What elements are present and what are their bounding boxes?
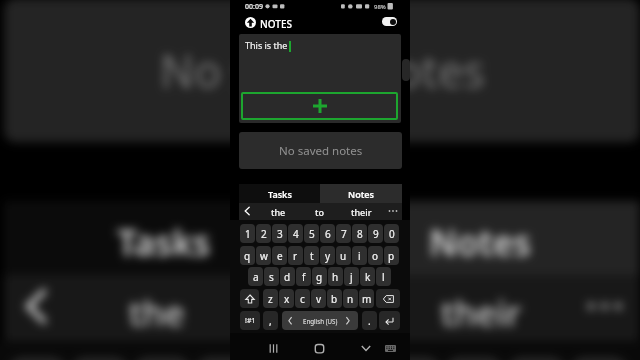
staticText: j [350, 270, 353, 284]
button[interactable] [379, 311, 400, 330]
staticText: English (US) [303, 317, 338, 325]
button[interactable]: Notes [320, 184, 402, 203]
button[interactable]: to [302, 203, 336, 220]
button[interactable]: j [344, 267, 359, 286]
button[interactable]: their [406, 275, 554, 341]
button[interactable]: d [280, 267, 295, 286]
staticText: No saved notes [279, 143, 363, 159]
staticText: 98% [374, 3, 386, 11]
button[interactable]: 8 [445, 357, 503, 360]
button[interactable] [382, 17, 397, 26]
button[interactable]: Tasks [239, 184, 321, 203]
button[interactable]: g [312, 267, 327, 286]
button[interactable]: the [86, 275, 226, 341]
button[interactable]: w [256, 246, 271, 265]
staticText: 5 [309, 227, 315, 241]
button[interactable]: i [352, 246, 367, 265]
button[interactable] [585, 287, 624, 326]
staticText: 00:09 [245, 2, 263, 12]
staticText: q [244, 249, 251, 263]
button[interactable]: s [264, 267, 279, 286]
button[interactable]: 0 [384, 224, 399, 243]
button[interactable]: 9 [507, 357, 566, 360]
button[interactable]: e [272, 246, 287, 265]
button[interactable]: No saved notes [4, 0, 640, 142]
button[interactable] [243, 206, 252, 216]
button[interactable]: c [295, 289, 310, 308]
button[interactable]: . [362, 311, 377, 330]
staticText: e [277, 249, 283, 263]
button[interactable]: m [359, 289, 374, 308]
staticText: their [351, 206, 372, 218]
button[interactable] [376, 289, 400, 308]
button[interactable]: t [304, 246, 319, 265]
button[interactable]: their [342, 203, 380, 220]
staticText: the [271, 206, 286, 218]
button[interactable] [241, 92, 398, 120]
button[interactable]: English (US) [282, 311, 358, 330]
button[interactable]: x [279, 289, 294, 308]
staticText: i [358, 249, 361, 263]
staticText: l [382, 270, 385, 284]
staticText: the [129, 287, 187, 334]
button[interactable]: 2 [256, 224, 271, 243]
staticText: m [362, 292, 372, 306]
staticText: 0 [389, 227, 395, 241]
button[interactable] [20, 287, 55, 326]
button[interactable]: 8 [352, 224, 367, 243]
button[interactable]: z [263, 289, 278, 308]
staticText: Notes [429, 217, 534, 263]
button[interactable]: 5 [304, 224, 319, 243]
button[interactable]: 9 [368, 224, 383, 243]
button[interactable]: f [296, 267, 311, 286]
button[interactable]: 6 [320, 224, 335, 243]
button[interactable] [385, 345, 396, 352]
button[interactable] [361, 345, 371, 352]
staticText: w [260, 249, 268, 263]
button[interactable]: to [250, 275, 382, 341]
button[interactable] [269, 344, 278, 354]
button[interactable]: l [376, 267, 391, 286]
button[interactable]: 3 [133, 357, 191, 360]
staticText: p [388, 249, 395, 263]
staticText: 3 [277, 227, 283, 241]
staticText: r [293, 249, 298, 263]
button[interactable]: k [360, 267, 375, 286]
button[interactable]: q [240, 246, 255, 265]
button[interactable]: y [320, 246, 335, 265]
button[interactable]: Notes [320, 201, 640, 275]
staticText: g [316, 270, 323, 284]
button[interactable]: r [288, 246, 303, 265]
button[interactable]: , [263, 311, 278, 330]
button[interactable]: 4 [195, 357, 254, 360]
button[interactable]: Tasks [4, 201, 324, 275]
button[interactable]: n [343, 289, 358, 308]
button[interactable]: 7 [382, 357, 441, 360]
button[interactable] [388, 206, 398, 216]
staticText: This is the [245, 39, 288, 51]
button[interactable]: 2 [70, 357, 129, 360]
button[interactable]: 4 [288, 224, 303, 243]
staticText: y [325, 249, 331, 263]
button[interactable]: 7 [336, 224, 351, 243]
staticText: a [253, 270, 259, 284]
button[interactable]: o [368, 246, 383, 265]
button[interactable]: the [260, 203, 296, 220]
button[interactable] [240, 289, 259, 308]
button[interactable]: b [327, 289, 342, 308]
button[interactable]: No saved notes [239, 132, 402, 169]
button[interactable]: h [328, 267, 343, 286]
button[interactable]: 3 [272, 224, 287, 243]
button[interactable]: a [248, 267, 263, 286]
staticText: . [368, 314, 371, 328]
button[interactable]: p [384, 246, 399, 265]
button[interactable]: 1 [8, 357, 66, 360]
button[interactable]: !#1 [240, 311, 260, 330]
button[interactable]: u [336, 246, 351, 265]
button[interactable] [315, 344, 324, 354]
button[interactable]: v [311, 289, 326, 308]
button[interactable]: 0 [570, 357, 628, 360]
button[interactable]: 1 [240, 224, 255, 243]
